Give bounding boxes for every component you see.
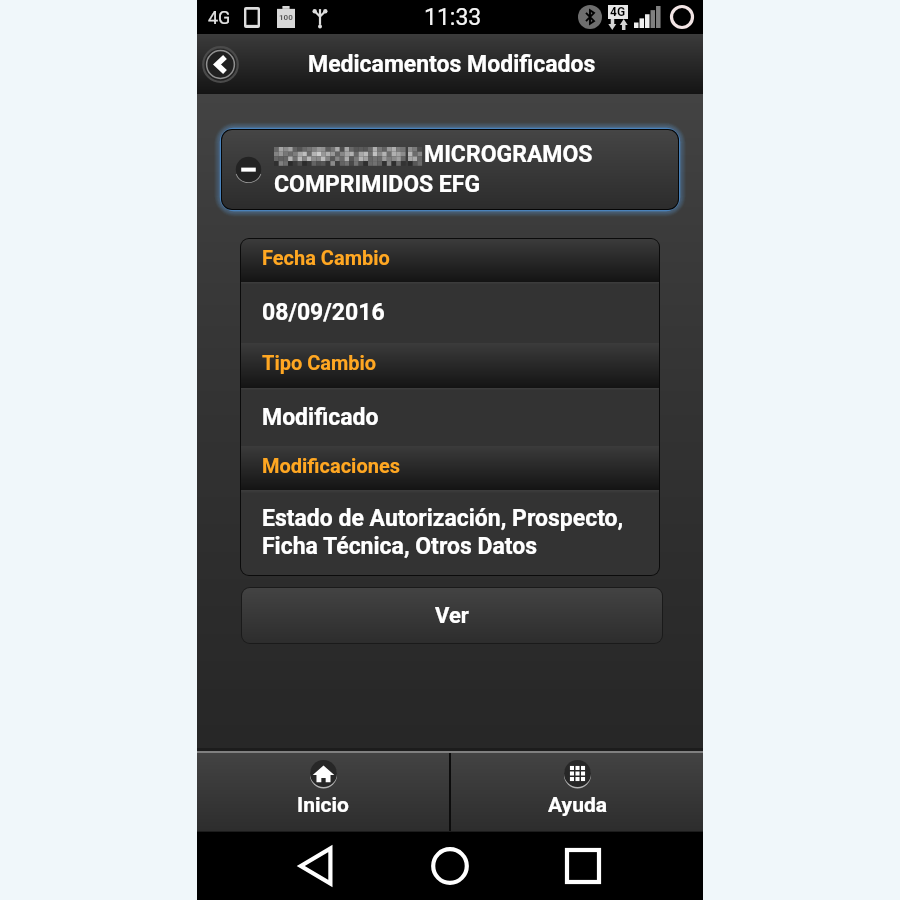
staticText: Modificaciones xyxy=(262,454,400,477)
staticText: Ayuda xyxy=(548,793,607,818)
staticText: 11:33 xyxy=(424,4,482,31)
button[interactable]: Home xyxy=(430,846,470,886)
button[interactable]: Ver xyxy=(242,588,662,643)
staticText: MICROGRAMOS xyxy=(424,141,593,168)
staticText: 100 xyxy=(279,13,293,22)
button[interactable]: MICROGRAMOS xyxy=(222,130,678,209)
staticText: Ver xyxy=(435,603,469,629)
staticText: Inicio xyxy=(297,793,349,818)
staticText: Fecha Cambio xyxy=(262,246,390,269)
staticText: COMPRIMIDOS EFG xyxy=(274,171,481,198)
staticText: Estado de Autorización, Prospecto, Ficha… xyxy=(262,505,647,560)
button[interactable]: Inicio xyxy=(197,753,449,831)
staticText: Modificado xyxy=(262,404,379,431)
staticText: 4G xyxy=(610,5,626,19)
staticText: Tipo Cambio xyxy=(262,351,377,374)
button[interactable]: Back xyxy=(202,46,239,83)
button[interactable]: Back xyxy=(296,846,336,886)
staticText: 08/09/2016 xyxy=(262,299,385,326)
button[interactable]: Recents xyxy=(563,846,603,886)
button[interactable]: Ayuda xyxy=(451,753,703,831)
staticText: Medicamentos Modificados xyxy=(308,51,596,78)
staticText: 4G xyxy=(208,7,231,28)
